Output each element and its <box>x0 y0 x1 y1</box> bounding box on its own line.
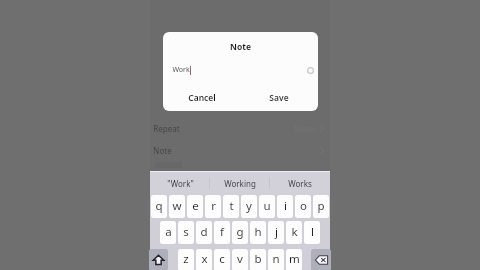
staticText: n <box>272 251 280 267</box>
button[interactable]: b <box>250 249 266 270</box>
button[interactable]: Repeat <box>153 117 324 139</box>
staticText: m <box>289 251 300 267</box>
button[interactable]: e <box>187 195 203 218</box>
staticText: j <box>275 224 278 240</box>
button[interactable]: Cancel <box>163 86 240 110</box>
button[interactable]: f <box>214 221 230 244</box>
staticText: Working <box>224 178 256 189</box>
staticText: o <box>300 198 307 214</box>
button[interactable]: p <box>313 195 329 218</box>
button[interactable]: i <box>277 195 293 218</box>
staticText: r <box>211 198 216 214</box>
staticText: Note <box>153 145 172 156</box>
staticText: y <box>246 198 252 214</box>
staticText: i <box>284 198 287 214</box>
staticText: c <box>219 251 225 267</box>
staticText: z <box>183 251 189 267</box>
button[interactable]: a <box>160 221 176 244</box>
button[interactable]: v <box>232 249 248 270</box>
staticText: w <box>172 198 182 214</box>
staticText: Cancel <box>188 92 216 104</box>
button[interactable]: d <box>196 221 212 244</box>
button[interactable]: z <box>178 249 194 270</box>
staticText: s <box>183 224 189 240</box>
button[interactable]: u <box>259 195 275 218</box>
staticText: k <box>291 224 298 240</box>
staticText: d <box>200 224 208 240</box>
staticText: u <box>263 198 271 214</box>
button[interactable]: g <box>232 221 248 244</box>
staticText: x <box>201 251 208 267</box>
staticText: f <box>220 224 224 240</box>
button[interactable]: n <box>268 249 284 270</box>
button[interactable]: l <box>304 221 320 244</box>
staticText: b <box>254 251 262 267</box>
button[interactable]: x <box>196 249 212 270</box>
staticText: p <box>317 198 325 214</box>
staticText: Note <box>230 41 251 53</box>
button[interactable]: k <box>286 221 302 244</box>
button[interactable]: Shift <box>149 249 168 270</box>
staticText: t <box>229 198 234 214</box>
button[interactable]: c <box>214 249 230 270</box>
button[interactable]: w <box>169 195 185 218</box>
button[interactable]: m <box>286 249 302 270</box>
staticText: v <box>237 251 243 267</box>
button[interactable]: y <box>241 195 257 218</box>
button[interactable]: Works <box>270 172 330 195</box>
staticText: g <box>236 224 244 240</box>
button[interactable]: r <box>205 195 221 218</box>
staticText: l <box>311 224 314 240</box>
button[interactable]: q <box>151 195 167 218</box>
staticText: h <box>254 224 262 240</box>
button[interactable]: Save <box>240 86 318 110</box>
button[interactable]: Backspace <box>311 249 331 270</box>
staticText: a <box>165 224 172 240</box>
button[interactable]: h <box>250 221 266 244</box>
staticText: Save <box>269 92 289 104</box>
staticText: e <box>192 198 199 214</box>
button[interactable]: o <box>295 195 311 218</box>
button[interactable]: Working <box>210 172 270 195</box>
button[interactable]: t <box>223 195 239 218</box>
button[interactable]: j <box>268 221 284 244</box>
staticText: "Work" <box>167 178 194 189</box>
staticText: Repeat <box>153 123 180 134</box>
staticText: q <box>155 198 163 214</box>
staticText: Works <box>288 178 312 189</box>
staticText: Work <box>172 65 190 75</box>
button[interactable]: s <box>178 221 194 244</box>
button[interactable]: "Work" <box>150 172 210 195</box>
